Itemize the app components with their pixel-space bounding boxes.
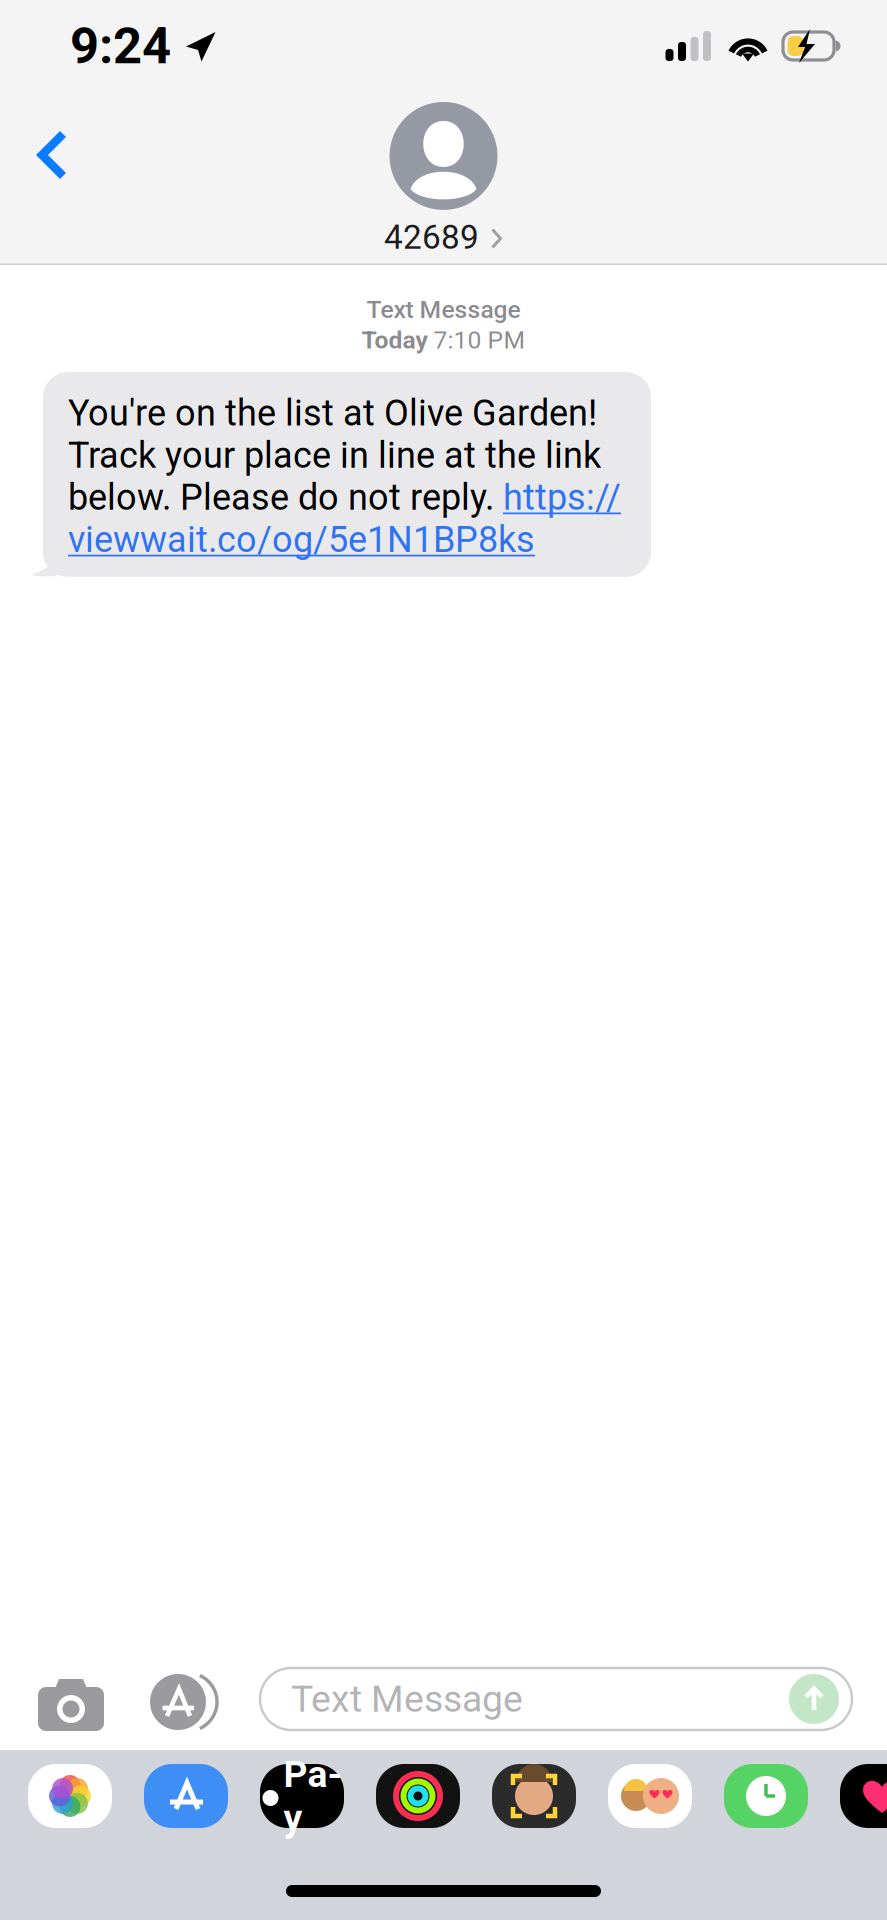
- button[interactable]: Photos: [28, 1764, 112, 1828]
- staticText: You're on the list at Olive Garden! Trac…: [68, 392, 621, 561]
- button[interactable]: Animoji: [608, 1764, 692, 1828]
- button[interactable]: Memoji Stickers: [492, 1764, 576, 1828]
- button[interactable]: Back: [0, 107, 91, 265]
- button[interactable]: Fitness: [376, 1764, 460, 1828]
- button[interactable]: 42689: [384, 102, 503, 265]
- button[interactable]: Camera: [38, 1673, 150, 1725]
- staticText: Text Message: [291, 1677, 523, 1721]
- staticText: Text Message: [366, 295, 520, 324]
- staticText: 42689: [384, 218, 479, 257]
- staticText: Today 7:10 PM: [361, 326, 525, 354]
- staticText: 9:24: [70, 16, 171, 76]
- button[interactable]: Clock: [724, 1764, 808, 1828]
- button[interactable]: Apple Pay: [260, 1764, 344, 1828]
- staticText: Pay: [283, 1752, 342, 1840]
- button[interactable]: Send: [789, 1674, 852, 1724]
- button[interactable]: App Store: [150, 1671, 260, 1727]
- button[interactable]: Digital Touch: [840, 1764, 887, 1828]
- button[interactable]: App Store: [144, 1764, 228, 1828]
